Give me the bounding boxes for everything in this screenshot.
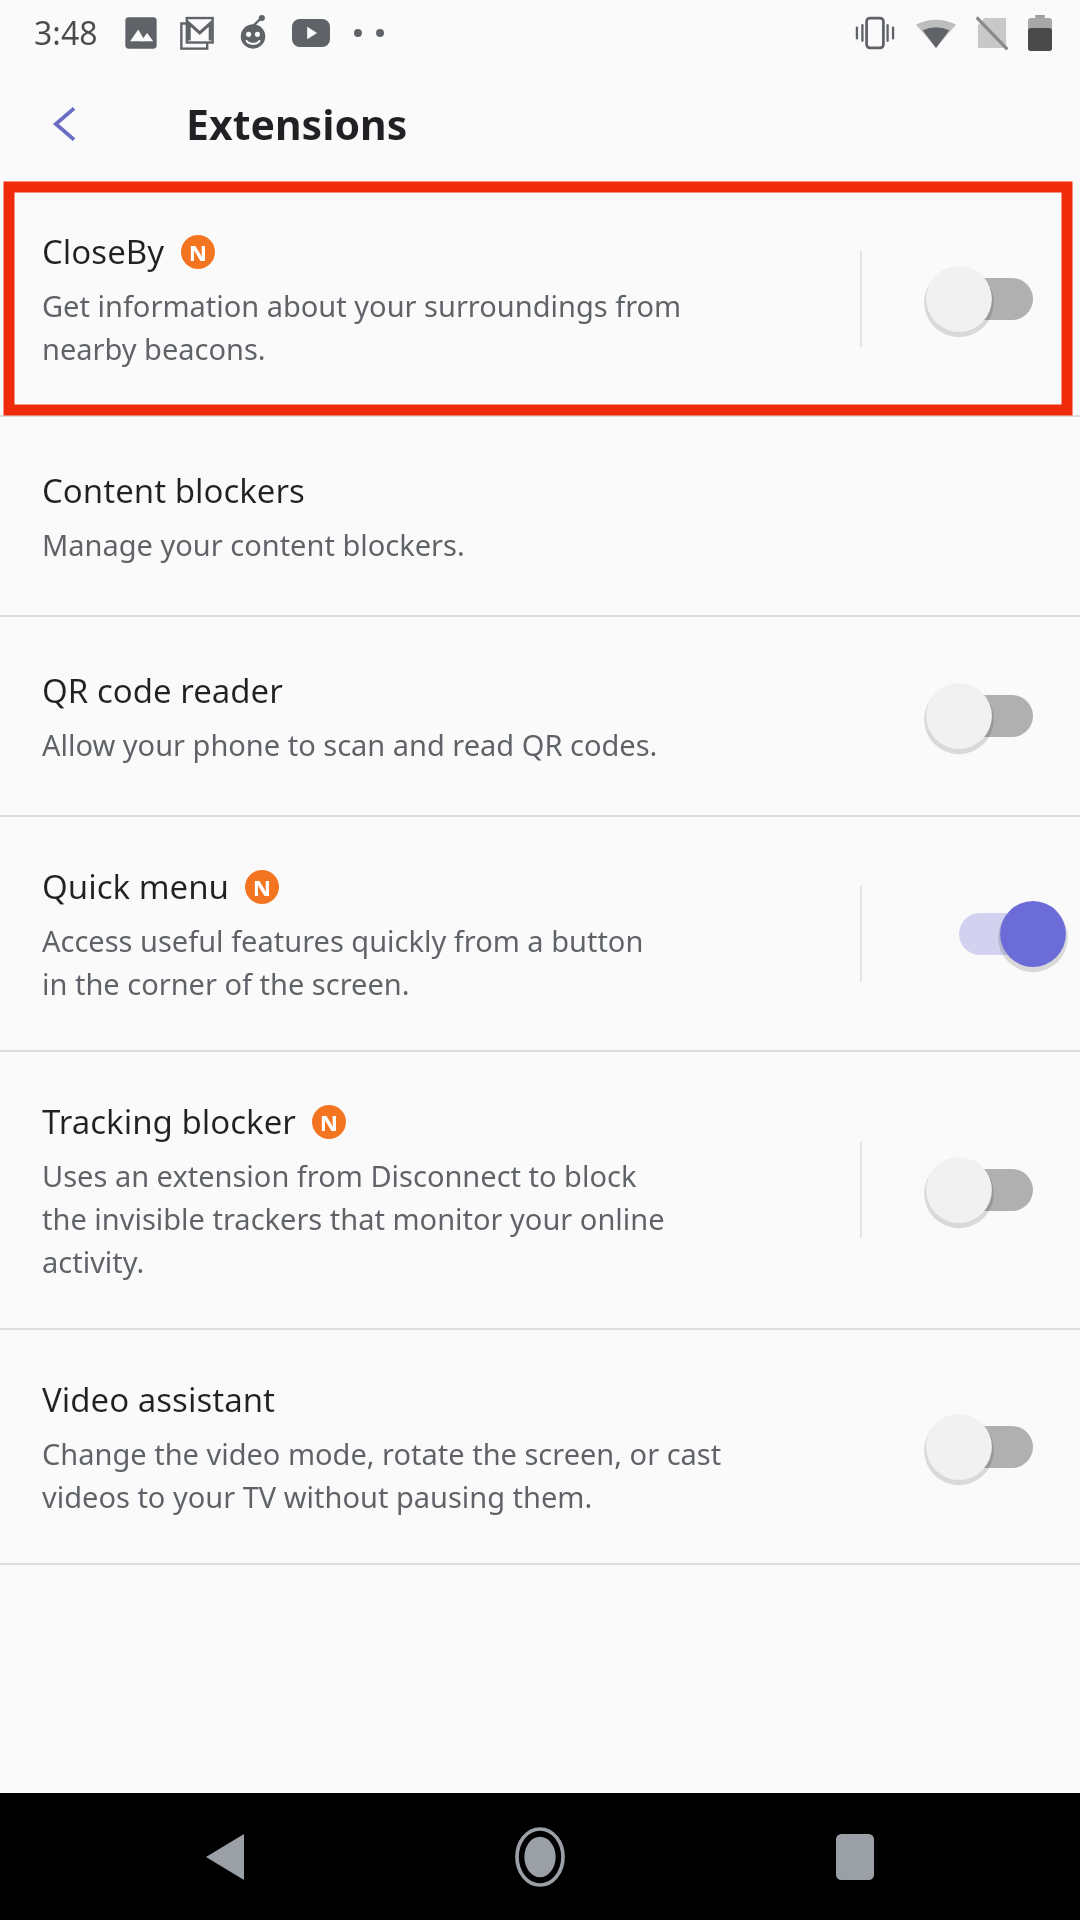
button[interactable]: Quick menu — [0, 817, 1080, 1050]
staticText: N — [189, 237, 207, 267]
staticText: N — [320, 1107, 338, 1137]
button[interactable]: Content blockers — [0, 417, 1080, 615]
staticText: Extensions — [186, 96, 408, 152]
staticText: Quick menu — [42, 864, 229, 909]
button[interactable]: Toggle Video assistant — [936, 1407, 1056, 1487]
staticText: Change the video mode, rotate the screen… — [42, 1434, 722, 1516]
staticText: Get information about your surroundings … — [42, 286, 682, 368]
staticText: Content blockers — [42, 468, 305, 513]
button[interactable]: Toggle QR code reader — [936, 676, 1056, 756]
button[interactable]: Tracking blocker — [0, 1052, 1080, 1328]
staticText: Tracking blocker — [42, 1099, 296, 1144]
staticText: Manage your content blockers. — [42, 525, 465, 564]
button[interactable]: Toggle CloseBy — [936, 259, 1056, 339]
button[interactable]: QR code reader — [0, 617, 1080, 815]
staticText: Allow your phone to scan and read QR cod… — [42, 725, 658, 764]
button[interactable]: Back — [135, 1793, 315, 1920]
staticText: Video assistant — [42, 1377, 275, 1422]
staticText: 3:48 — [34, 11, 98, 55]
staticText: Access useful features quickly from a bu… — [42, 921, 644, 1003]
button[interactable]: Home — [450, 1793, 630, 1920]
staticText: N — [253, 872, 271, 902]
button[interactable]: Video assistant — [0, 1330, 1080, 1563]
button[interactable]: Recent apps — [765, 1793, 945, 1920]
button[interactable]: Back — [28, 87, 102, 161]
button[interactable]: CloseBy — [0, 182, 1080, 415]
button[interactable]: Toggle Tracking blocker — [936, 1150, 1056, 1230]
staticText: CloseBy — [42, 229, 165, 274]
staticText: Uses an extension from Disconnect to blo… — [42, 1156, 665, 1281]
staticText: QR code reader — [42, 668, 283, 713]
button[interactable]: Toggle Quick menu — [936, 894, 1056, 974]
